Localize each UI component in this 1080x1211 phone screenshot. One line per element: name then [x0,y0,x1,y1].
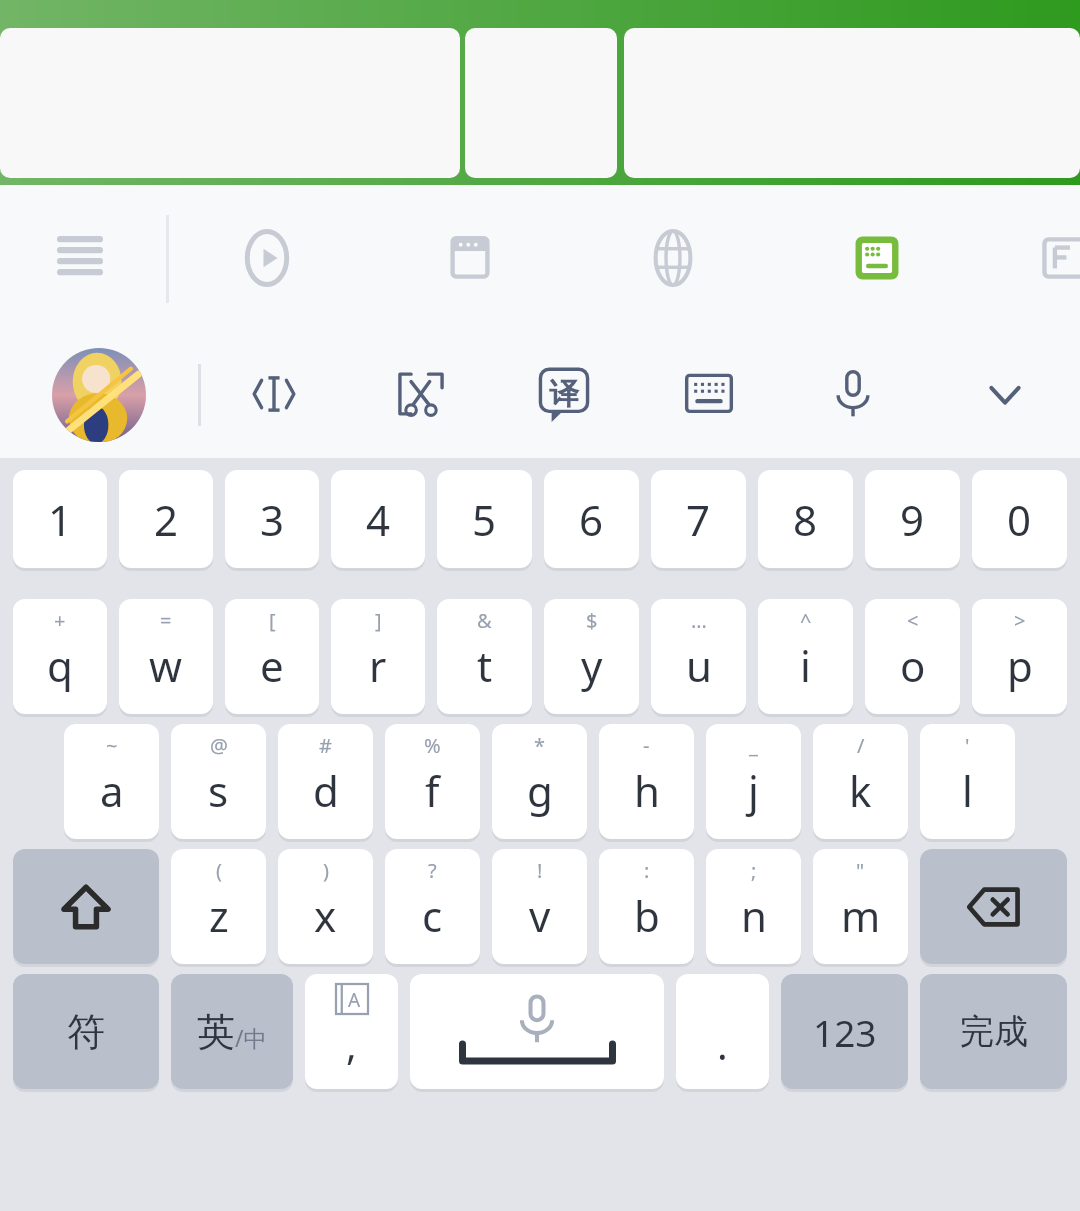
button[interactable]: Keyboard layout [829,185,925,330]
staticText: p [1007,637,1033,694]
button[interactable]: A [305,974,398,1089]
button[interactable]: - [599,724,694,839]
button[interactable]: > [972,599,1067,714]
button[interactable]: ^ [758,599,853,714]
button[interactable]: 完成 [920,974,1067,1089]
staticText: w [149,637,183,694]
staticText: x [314,887,337,944]
staticText: & [477,607,492,634]
button[interactable]: Space [410,974,664,1089]
button[interactable]: Play [219,185,315,330]
button[interactable]: Cursor [227,330,321,458]
staticText: y [581,637,603,694]
staticText: 3 [260,491,285,548]
staticText: e [260,637,284,694]
button[interactable]: & [437,599,532,714]
button[interactable]: Clipboard [422,185,518,330]
button[interactable]: 4 [331,470,425,568]
button[interactable]: + [13,599,107,714]
button[interactable]: Language [625,185,721,330]
button[interactable]: 6 [544,470,639,568]
staticText: l [962,762,973,819]
button[interactable]: ( [171,849,266,964]
staticText: k [849,762,872,819]
button[interactable]: / [813,724,908,839]
button[interactable]: 2 [119,470,213,568]
button[interactable]: 符 [13,974,159,1089]
button[interactable]: * [492,724,587,839]
staticText: ' [965,732,970,759]
staticText: @ [210,732,228,759]
staticText: 9 [900,491,925,548]
staticText: 0 [1007,491,1032,548]
staticText: A [348,987,361,1013]
button[interactable]: < [865,599,960,714]
button[interactable]: ' [920,724,1015,839]
button[interactable]: # [278,724,373,839]
button[interactable]: Translate [517,330,611,458]
button[interactable]: : [599,849,694,964]
staticText: d [313,762,339,819]
staticText: 英 [197,1008,235,1056]
staticText: _ [749,732,758,759]
staticText: ; [751,857,757,884]
staticText: f [425,762,440,819]
staticText: n [741,887,767,944]
button[interactable]: Profile [52,348,146,442]
button[interactable]: 123 [781,974,908,1089]
button[interactable]: ~ [64,724,159,839]
staticText: 译 [549,375,579,413]
staticText: … [691,607,707,634]
button[interactable]: % [385,724,480,839]
button[interactable]: Shift [13,849,159,964]
button[interactable]: ? [385,849,480,964]
staticText: * [534,732,546,759]
button[interactable]: 英 [171,974,293,1089]
button[interactable]: = [119,599,213,714]
button[interactable] [624,28,1080,178]
button[interactable]: 7 [651,470,746,568]
button[interactable]: ) [278,849,373,964]
button[interactable]: Font [1015,185,1080,330]
button[interactable]: " [813,849,908,964]
staticText: ( [216,857,222,884]
button[interactable]: 9 [865,470,960,568]
button[interactable]: [ [225,599,319,714]
staticText: s [208,762,229,819]
staticText: 完成 [960,1010,1028,1053]
button[interactable]: 8 [758,470,853,568]
button[interactable]: Collapse [958,330,1052,458]
staticText: q [47,637,73,694]
button[interactable]: 1 [13,470,107,568]
button[interactable]: 3 [225,470,319,568]
button[interactable]: ; [706,849,801,964]
button[interactable]: Keyboard [662,330,756,458]
staticText: m [841,887,881,944]
staticText: v [529,887,551,944]
button[interactable]: 5 [437,470,532,568]
button[interactable]: Voice input [806,330,900,458]
staticText: 123 [813,1007,877,1057]
button[interactable]: ! [492,849,587,964]
button[interactable]: 0 [972,470,1067,568]
staticText: : [644,857,650,884]
staticText: " [856,857,865,884]
button[interactable] [0,28,460,178]
staticText: j [748,762,759,819]
button[interactable]: … [651,599,746,714]
button[interactable]: _ [706,724,801,839]
staticText: [ [269,607,276,634]
button[interactable]: $ [544,599,639,714]
button[interactable]: . [676,974,769,1089]
staticText: /中 [235,1022,267,1053]
button[interactable]: Menu [36,185,124,330]
button[interactable]: @ [171,724,266,839]
button[interactable] [465,28,617,178]
staticText: 5 [472,491,497,548]
staticText: 2 [154,491,179,548]
staticText: u [686,637,712,694]
button[interactable]: ] [331,599,425,714]
button[interactable]: Cut [374,330,468,458]
button[interactable]: Backspace [920,849,1067,964]
staticText: i [800,637,811,694]
